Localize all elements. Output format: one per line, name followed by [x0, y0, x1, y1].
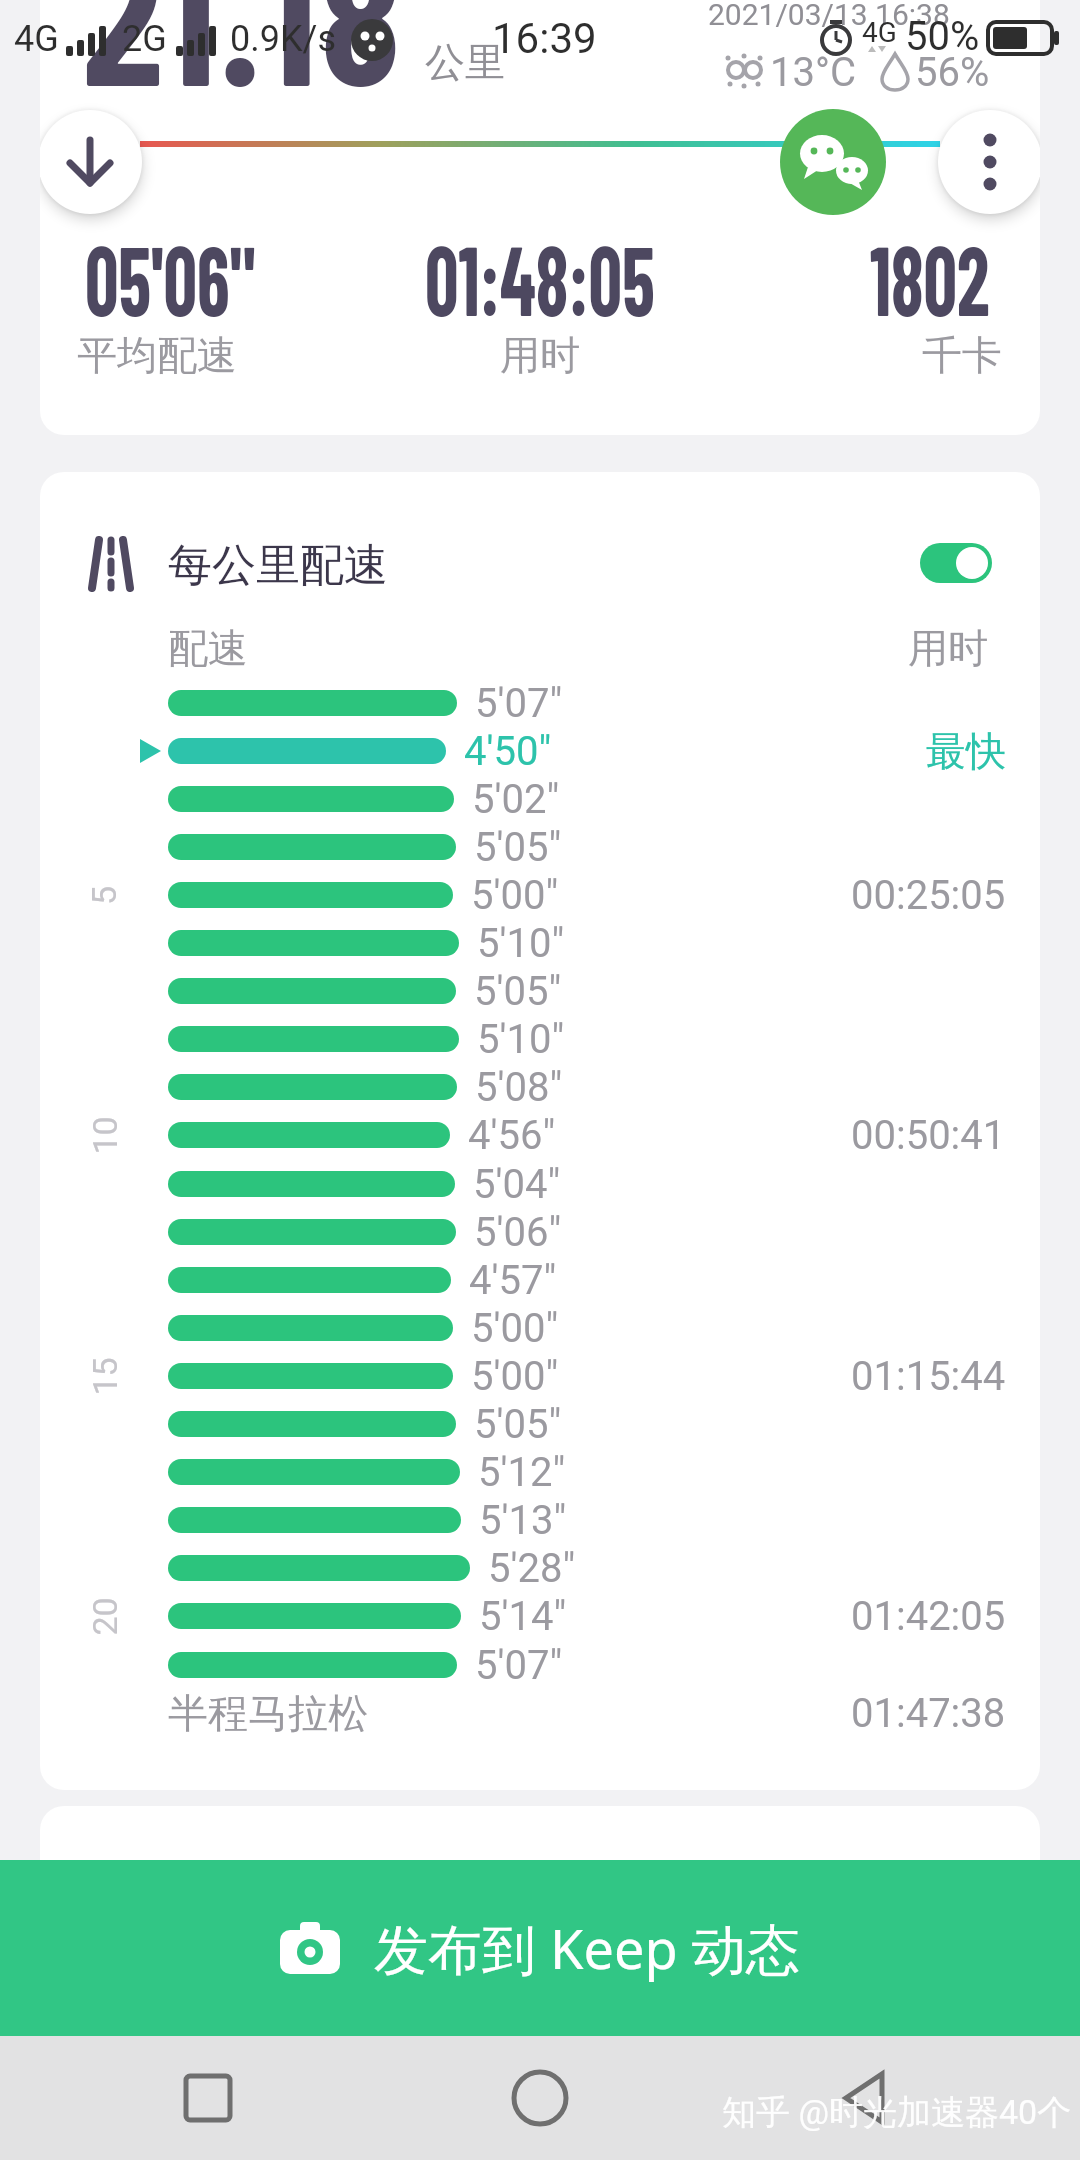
staticText: 01:15:44: [851, 1353, 1006, 1400]
button[interactable]: [780, 109, 886, 215]
staticText: 用时: [908, 623, 988, 673]
staticText: 01:42:05: [851, 1593, 1006, 1640]
staticText: 1802: [870, 219, 990, 336]
staticText: 每公里配速: [168, 538, 388, 593]
staticText: 4'50": [464, 728, 552, 775]
staticText: 20: [84, 1596, 124, 1635]
staticText: 公里: [425, 37, 505, 87]
staticText: 56%: [915, 49, 990, 96]
staticText: 5'06": [474, 1209, 562, 1256]
button[interactable]: 发布到 Keep 动态: [0, 1860, 1080, 2036]
staticText: 50%: [905, 13, 980, 60]
staticText: 5'10": [477, 1016, 565, 1063]
staticText: 5'05": [474, 968, 562, 1015]
staticText: 5'00": [471, 1353, 559, 1400]
staticText: 4'57": [469, 1257, 557, 1304]
staticText: 5'10": [477, 920, 565, 967]
staticText: 5'04": [473, 1161, 561, 1208]
staticText: 5'05": [474, 1401, 562, 1448]
button[interactable]: [920, 543, 992, 583]
staticText: 01:47:38: [851, 1690, 1006, 1737]
staticText: 2021/03/13 16:38: [708, 0, 950, 32]
staticText: 4'56": [468, 1112, 556, 1159]
staticText: 5'07": [475, 1642, 563, 1689]
staticText: 5'02": [472, 776, 560, 823]
staticText: 15: [84, 1356, 124, 1395]
staticText: 21.18: [82, 0, 405, 123]
staticText: 用时: [500, 330, 580, 380]
staticText: 05'06": [85, 219, 256, 336]
staticText: 2G: [122, 18, 167, 60]
staticText: 0.9K/s: [230, 18, 336, 60]
button[interactable]: [168, 2058, 248, 2138]
staticText: 平均配速: [77, 330, 237, 380]
staticText: 发布到 Keep 动态: [374, 1911, 800, 1985]
staticText: 5'00": [471, 1305, 559, 1352]
staticText: 5'14": [479, 1593, 567, 1640]
staticText: 千卡: [922, 330, 1002, 380]
button[interactable]: [828, 2058, 908, 2138]
staticText: 配速: [168, 623, 248, 673]
staticText: 5'07": [475, 680, 563, 727]
staticText: 5'00": [471, 872, 559, 919]
staticText: 半程马拉松: [168, 1688, 368, 1738]
staticText: 16:39: [492, 14, 597, 63]
staticText: 5'05": [474, 824, 562, 871]
staticText: 5'08": [475, 1064, 563, 1111]
staticText: 4G: [862, 16, 897, 49]
button[interactable]: [500, 2058, 580, 2138]
staticText: 5'12": [478, 1449, 566, 1496]
staticText: 知乎 @时光加速器40个: [722, 2091, 1072, 2134]
button[interactable]: [938, 110, 1040, 214]
button[interactable]: [40, 110, 142, 214]
staticText: 4G: [14, 18, 59, 60]
staticText: 最快: [926, 726, 1006, 776]
staticText: 01:48:05: [425, 219, 655, 336]
staticText: 13°C: [770, 49, 856, 96]
staticText: 5'13": [479, 1497, 567, 1544]
staticText: 00:50:41: [851, 1112, 1006, 1159]
staticText: 5'28": [488, 1545, 576, 1592]
staticText: 10: [84, 1115, 124, 1154]
staticText: 00:25:05: [851, 872, 1006, 919]
staticText: 5: [84, 885, 124, 905]
